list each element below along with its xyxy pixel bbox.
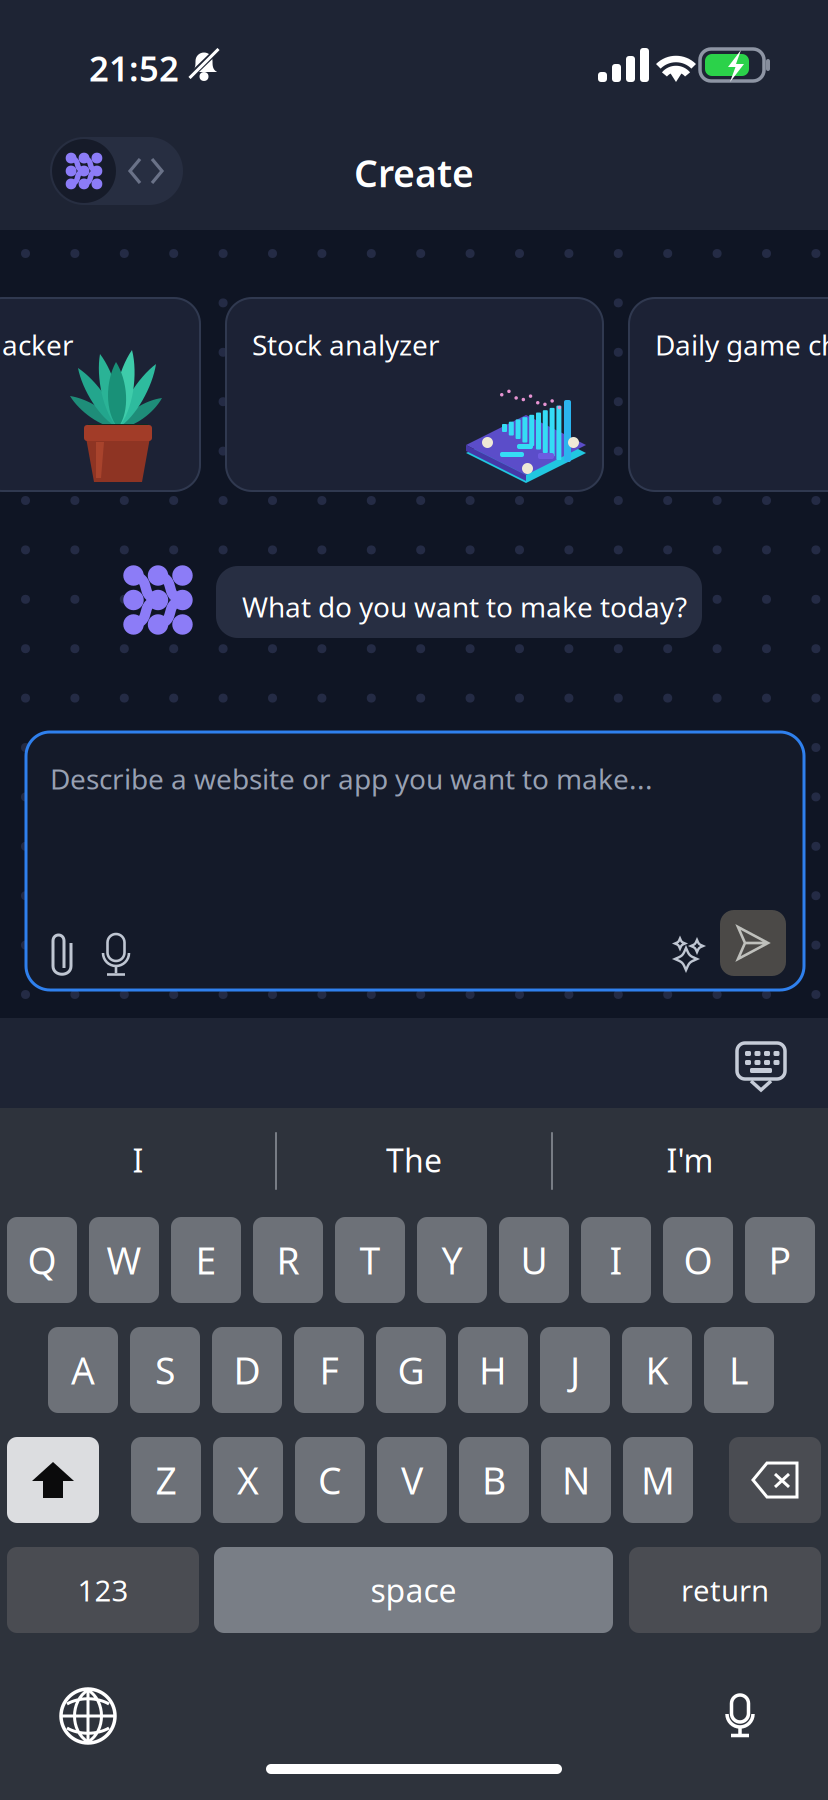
button[interactable]: M [623,1437,693,1523]
button[interactable]: Switch to code view [50,137,183,205]
staticText: Describe a website or app you want to ma… [50,760,653,797]
button[interactable]: J [540,1327,610,1413]
button[interactable]: N [541,1437,611,1523]
staticText: I'm [666,1139,713,1181]
staticText: M [641,1455,675,1505]
staticText: A [71,1345,95,1395]
button[interactable]: Daily game ch [629,298,828,491]
staticText: H [479,1345,507,1395]
button[interactable]: Shift [7,1437,99,1523]
button[interactable]: S [130,1327,200,1413]
button[interactable]: Z [131,1437,201,1523]
staticText: What do you want to make today? [242,588,687,625]
button[interactable]: U [499,1217,569,1303]
button[interactable]: L [704,1327,774,1413]
button[interactable]: The [276,1110,552,1210]
staticText: The [386,1139,442,1181]
button[interactable]: Q [7,1217,77,1303]
staticText: W [106,1235,141,1285]
staticText: C [318,1455,342,1505]
staticText: S [155,1345,175,1395]
button[interactable]: A [48,1327,118,1413]
button[interactable]: Y [417,1217,487,1303]
button[interactable]: G [376,1327,446,1413]
staticText: 21:52 [89,45,179,91]
button[interactable]: Dictate [703,1670,777,1762]
staticText: E [195,1235,216,1285]
button[interactable]: return [629,1547,821,1633]
staticText: F [319,1345,338,1395]
staticText: B [482,1455,506,1505]
button[interactable]: 123 [7,1547,199,1633]
button[interactable]: X [213,1437,283,1523]
button[interactable]: Stock analyzer [226,298,603,491]
button[interactable]: F [294,1327,364,1413]
button[interactable]: C [295,1437,365,1523]
staticText: O [683,1235,712,1285]
staticText: X [237,1455,259,1505]
staticText: Create [354,148,474,198]
staticText: N [562,1455,590,1505]
staticText: return [681,1570,769,1609]
staticText: I [132,1139,143,1181]
staticText: Z [155,1455,176,1505]
staticText: Daily game ch [655,326,828,363]
button[interactable]: H [458,1327,528,1413]
staticText: G [397,1345,424,1395]
button[interactable]: Improve prompt [660,925,718,983]
staticText: I [609,1235,622,1285]
button[interactable]: E [171,1217,241,1303]
button[interactable]: O [663,1217,733,1303]
staticText: acker [2,326,74,363]
staticText: 123 [77,1570,128,1609]
button[interactable]: B [459,1437,529,1523]
button[interactable]: V [377,1437,447,1523]
staticText: R [276,1235,299,1285]
button[interactable]: Voice input [89,922,143,988]
staticText: Y [441,1235,462,1285]
staticText: space [370,1569,456,1611]
staticText: D [233,1345,260,1395]
button[interactable]: K [622,1327,692,1413]
button[interactable]: I [581,1217,651,1303]
staticText: L [729,1345,749,1395]
button[interactable]: I'm [552,1110,828,1210]
button[interactable]: acker [0,298,200,491]
button[interactable]: Send [720,910,786,976]
button[interactable]: space [214,1547,613,1633]
staticText: V [401,1455,423,1505]
button[interactable]: D [212,1327,282,1413]
button[interactable]: Delete [729,1437,821,1523]
staticText: J [570,1345,580,1395]
button[interactable]: Dismiss keyboard [725,1031,797,1103]
button[interactable]: W [89,1217,159,1303]
button[interactable]: I [0,1110,276,1210]
button[interactable]: Next keyboard [43,1671,133,1761]
staticText: K [645,1345,668,1395]
button[interactable]: P [745,1217,815,1303]
staticText: T [359,1235,380,1285]
button[interactable]: R [253,1217,323,1303]
button[interactable]: Attach file [34,921,90,989]
staticText: Stock analyzer [252,326,440,363]
staticText: P [768,1235,791,1285]
staticText: U [520,1235,547,1285]
staticText: Q [27,1235,56,1285]
button[interactable]: T [335,1217,405,1303]
